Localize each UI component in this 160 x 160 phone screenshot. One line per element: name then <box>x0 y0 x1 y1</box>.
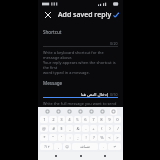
button[interactable]: Period <box>99 143 107 150</box>
button[interactable]: Save <box>112 9 119 20</box>
button[interactable]: Recents <box>99 152 111 160</box>
button[interactable]: + <box>90 125 97 132</box>
button[interactable]: 0/20 <box>43 35 118 46</box>
staticText: + <box>92 126 95 132</box>
button[interactable]: Keyboard tool 1 <box>44 108 51 115</box>
button[interactable]: Enter <box>108 143 121 150</box>
button[interactable]: Keyboard tool 3 <box>66 108 73 115</box>
staticText: Add saved reply <box>58 10 112 20</box>
button[interactable]: Space <box>72 143 98 150</box>
staticText: 3 <box>60 117 63 123</box>
button[interactable]: < <box>106 134 113 141</box>
button[interactable]: Comma <box>54 143 62 150</box>
staticText: ☺ <box>65 145 69 149</box>
staticText: Message <box>43 80 63 86</box>
button[interactable]: 3 <box>58 116 65 123</box>
staticText: 7 <box>92 117 95 123</box>
button[interactable]: Close <box>42 9 53 20</box>
button[interactable]: - <box>82 125 89 132</box>
staticText: _ <box>69 126 71 132</box>
button[interactable]: ! <box>82 134 89 141</box>
staticText: ) <box>109 126 111 132</box>
staticText: : <box>69 135 71 141</box>
button[interactable]: Keyboard tool 6 <box>99 108 106 115</box>
button[interactable]: > <box>114 134 121 141</box>
button[interactable]: Back <box>50 152 62 160</box>
button[interactable]: @ <box>40 125 48 132</box>
button[interactable]: 5 <box>74 116 81 123</box>
button[interactable]: & <box>74 125 81 132</box>
button[interactable]: 6 <box>82 116 89 123</box>
button[interactable]: ) <box>106 125 113 132</box>
button[interactable]: 9 <box>106 116 113 123</box>
staticText: & <box>76 126 80 132</box>
staticText: Write the full message you want to send … <box>43 101 118 107</box>
staticText: Shortcut <box>43 29 62 35</box>
staticText: < <box>108 135 111 141</box>
staticText: مسافة <box>80 145 90 149</box>
button[interactable]: Keyboard tool 4 <box>77 108 84 115</box>
staticText: 8 <box>100 117 103 123</box>
button[interactable]: : <box>66 134 73 141</box>
staticText: ↵ <box>113 145 117 149</box>
button[interactable]: / <box>114 125 121 132</box>
button[interactable]: 8 <box>98 116 105 123</box>
button[interactable]: 7 <box>90 116 97 123</box>
staticText: 0/50 <box>110 92 118 97</box>
button[interactable]: _ <box>66 125 73 132</box>
staticText: ! <box>85 135 87 141</box>
button[interactable]: Keyboard tool 7 <box>110 108 117 115</box>
button[interactable]: # <box>49 125 57 132</box>
staticText: # <box>52 126 55 132</box>
button[interactable]: ( <box>98 125 105 132</box>
staticText: " <box>52 135 54 141</box>
button[interactable]: Emoji <box>63 143 71 150</box>
button[interactable]: ? <box>90 134 97 141</box>
button[interactable]: 2 <box>49 116 57 123</box>
button[interactable]: ' <box>58 134 65 141</box>
staticText: Write a keyboard shortcut for the messag… <box>43 50 118 75</box>
staticText: ?١٢ <box>44 144 50 149</box>
button[interactable]: Home <box>75 152 87 160</box>
button[interactable]: % <box>98 134 105 141</box>
staticText: إدخال النص هنا <box>81 91 108 97</box>
button[interactable]: 0 <box>114 116 121 123</box>
button[interactable]: 4 <box>66 116 73 123</box>
button[interactable]: Keyboard tool 5 <box>88 108 95 115</box>
staticText: $ <box>60 126 63 132</box>
button[interactable]: * <box>40 134 48 141</box>
staticText: 0/20 <box>110 41 118 46</box>
staticText: 9 <box>108 117 111 123</box>
staticText: 6 <box>84 117 87 123</box>
staticText: . <box>103 144 104 149</box>
staticText: / <box>117 126 119 132</box>
staticText: % <box>100 135 104 141</box>
staticText: ( <box>101 126 103 132</box>
staticText: - <box>85 126 87 132</box>
button[interactable]: إدخال النص هنا <box>43 86 118 97</box>
button[interactable]: $ <box>58 125 65 132</box>
staticText: 0 <box>116 117 119 123</box>
button[interactable]: Symbols <box>40 143 53 150</box>
button[interactable]: Keyboard tool 2 <box>55 108 62 115</box>
staticText: @ <box>42 126 46 132</box>
staticText: 5 <box>76 117 79 123</box>
staticText: 2 <box>52 117 55 123</box>
staticText: , <box>58 144 59 149</box>
staticText: > <box>116 135 119 141</box>
button[interactable]: " <box>49 134 57 141</box>
button[interactable]: ; <box>74 134 81 141</box>
button[interactable]: 1 <box>40 116 48 123</box>
staticText: ? <box>93 135 95 141</box>
staticText: 1 <box>43 117 46 123</box>
staticText: * <box>43 135 46 141</box>
staticText: ; <box>77 135 79 141</box>
staticText: 4 <box>68 117 71 123</box>
staticText: ' <box>61 135 62 141</box>
